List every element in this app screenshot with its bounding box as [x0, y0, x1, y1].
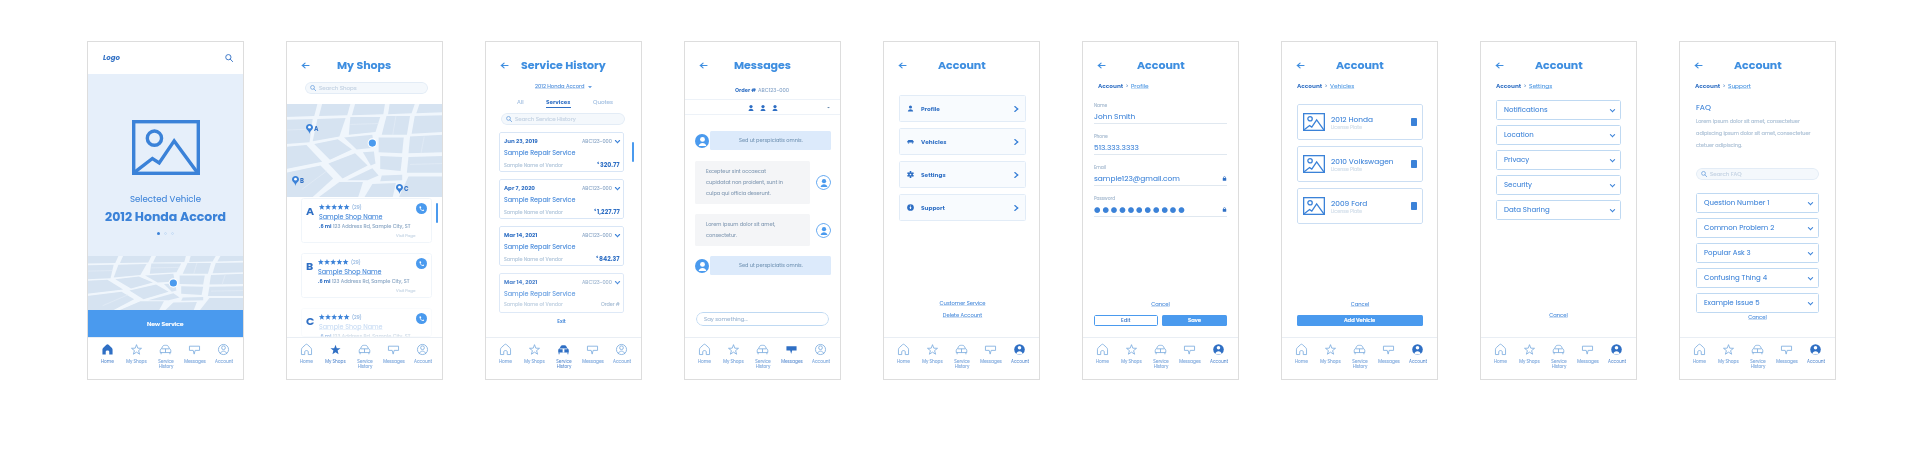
button[interactable]: Settings [899, 161, 1026, 188]
button[interactable]: Service History [1345, 338, 1374, 380]
button[interactable]: Profile [899, 95, 1026, 122]
button[interactable]: Messages [1772, 338, 1801, 380]
button[interactable]: 2012 Honda [1297, 104, 1423, 140]
button[interactable]: Profile [1131, 82, 1149, 90]
button[interactable]: My Shops [1714, 338, 1743, 380]
button[interactable]: Exit [499, 318, 624, 325]
button[interactable]: Home [889, 338, 918, 380]
button[interactable]: Cancel [1696, 314, 1819, 321]
button[interactable]: All [517, 98, 524, 106]
button[interactable]: My Shops [1515, 338, 1544, 380]
button[interactable]: Service History [947, 338, 976, 380]
button[interactable]: Service History [350, 338, 379, 380]
button[interactable]: Service History [1146, 338, 1175, 380]
button[interactable]: 2010 Volkswagen [1297, 146, 1423, 182]
button[interactable]: Home [491, 338, 520, 380]
button[interactable]: Data Sharing [1496, 200, 1621, 220]
button[interactable]: Back [1493, 59, 1505, 71]
button[interactable]: Home [1287, 338, 1316, 380]
button[interactable]: Account [1005, 338, 1034, 380]
button[interactable]: Search [224, 53, 233, 62]
button[interactable]: Service History [1544, 338, 1573, 380]
button[interactable]: Service History [151, 338, 180, 380]
button[interactable]: Messages [1573, 338, 1602, 380]
button[interactable]: Back [896, 59, 908, 71]
button[interactable]: Delete Account [899, 312, 1026, 319]
button[interactable]: Security [1496, 175, 1621, 195]
button[interactable]: Vehicles [1330, 82, 1355, 90]
button[interactable]: My Shops [321, 338, 350, 380]
button[interactable]: Account [1098, 82, 1124, 90]
button[interactable]: My Shops [520, 338, 549, 380]
button[interactable]: My Shops [918, 338, 947, 380]
button[interactable]: Home [1088, 338, 1117, 380]
button[interactable]: Account [1204, 338, 1233, 380]
button[interactable]: Save [1162, 315, 1227, 326]
button[interactable]: Question Number 1 [1696, 193, 1819, 213]
button[interactable]: Mar 14, 2021 [499, 273, 624, 313]
button[interactable]: Delete vehicle [1411, 118, 1417, 126]
button[interactable]: Back [1095, 59, 1107, 71]
button[interactable]: Mar 14, 2021 [499, 226, 624, 266]
button[interactable]: 2009 Ford [1297, 188, 1423, 224]
button[interactable]: Apr 7, 2020 [499, 179, 624, 219]
button[interactable]: Cancel [1094, 301, 1227, 308]
button[interactable]: Say something... [696, 312, 829, 326]
button[interactable]: My Shops [1316, 338, 1345, 380]
button[interactable]: Delete vehicle [1411, 202, 1417, 210]
button[interactable]: Back [1294, 59, 1306, 71]
button[interactable]: Service History [748, 338, 777, 380]
button[interactable]: Home [690, 338, 719, 380]
button[interactable]: Search FAQ [1696, 168, 1819, 180]
button[interactable]: Popular Ask 3 [1696, 243, 1819, 263]
button[interactable]: Back [1692, 59, 1704, 71]
button[interactable]: Privacy [1496, 150, 1621, 170]
button[interactable]: Confusing Thing 4 [1696, 268, 1819, 288]
button[interactable]: B [301, 253, 432, 298]
button[interactable]: Account [806, 338, 835, 380]
button[interactable]: Customer Service [899, 300, 1026, 307]
button[interactable]: Jun 23, 2019 [499, 132, 624, 172]
button[interactable]: Home [93, 338, 122, 380]
button[interactable]: Messages [1175, 338, 1204, 380]
button[interactable]: My Shops [122, 338, 151, 380]
button[interactable]: Account [1297, 82, 1323, 90]
button[interactable]: Common Problem 2 [1696, 218, 1819, 238]
button[interactable]: Messages [379, 338, 408, 380]
button[interactable]: A [301, 198, 432, 243]
button[interactable]: Cancel [1297, 301, 1423, 308]
button[interactable]: Home [1685, 338, 1714, 380]
button[interactable]: Account [1403, 338, 1432, 380]
button[interactable]: Cancel [1496, 312, 1621, 319]
button[interactable]: Location [1496, 125, 1621, 145]
button[interactable]: Example Issue 5 [1696, 293, 1819, 313]
button[interactable]: Settings [1529, 82, 1553, 90]
button[interactable]: Service History [549, 338, 578, 380]
button[interactable]: Quotes [593, 98, 613, 106]
button[interactable]: Messages [180, 338, 209, 380]
button[interactable]: My Shops [1117, 338, 1146, 380]
button[interactable]: Participant [759, 104, 766, 111]
button[interactable]: Back [697, 59, 709, 71]
button[interactable]: Notifications [1496, 100, 1621, 120]
button[interactable]: Services [546, 98, 571, 108]
button[interactable]: C [301, 308, 432, 337]
button[interactable]: Delete vehicle [1411, 160, 1417, 168]
button[interactable]: Home [292, 338, 321, 380]
button[interactable]: Back [498, 59, 510, 71]
button[interactable]: Account [209, 338, 238, 380]
button[interactable]: Add Vehicle [1297, 315, 1423, 326]
button[interactable]: Vehicles [899, 128, 1026, 155]
button[interactable]: New Service [87, 310, 244, 337]
button[interactable]: Participant [747, 104, 754, 111]
button[interactable]: Call shop [416, 313, 427, 324]
button[interactable]: Account [1602, 338, 1631, 380]
button[interactable]: Account [1801, 338, 1830, 380]
button[interactable]: Account [1695, 82, 1721, 90]
button[interactable]: Account [408, 338, 437, 380]
button[interactable]: Search Service History [501, 113, 625, 125]
button[interactable]: My Shops [719, 338, 748, 380]
button[interactable]: Participant [771, 104, 778, 111]
button[interactable]: Call shop [416, 258, 427, 269]
button[interactable]: Back [299, 59, 311, 71]
